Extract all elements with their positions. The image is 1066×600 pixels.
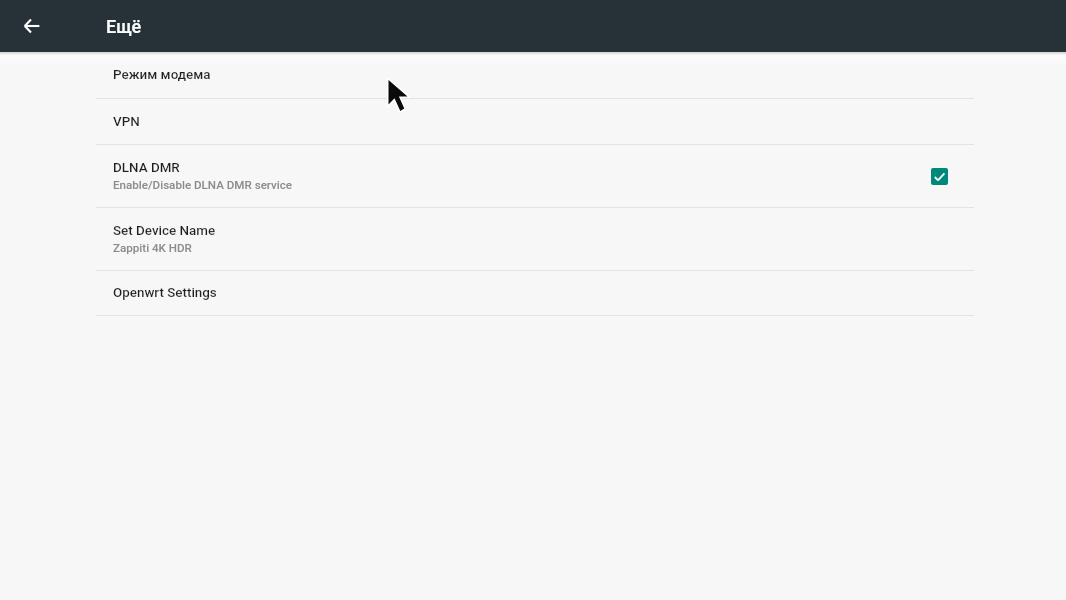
- staticText: Zappiti 4K HDR: [113, 241, 192, 255]
- staticText: Enable/Disable DLNA DMR service: [113, 178, 293, 192]
- button[interactable]: Set Device Name: [0, 208, 1066, 271]
- button[interactable]: Режим модема: [0, 52, 1066, 99]
- button[interactable]: Openwrt Settings: [0, 271, 1066, 316]
- staticText: DLNA DMR: [113, 160, 180, 176]
- button[interactable]: DLNA DMR: [0, 145, 1066, 208]
- staticText: VPN: [113, 114, 140, 130]
- button[interactable]: Back: [0, 0, 62, 52]
- staticText: Openwrt Settings: [113, 285, 217, 301]
- button[interactable]: VPN: [0, 99, 1066, 145]
- staticText: Режим модема: [113, 67, 211, 83]
- button[interactable]: Toggle DLNA DMR: [931, 168, 948, 185]
- staticText: Set Device Name: [113, 223, 216, 239]
- staticText: Ещё: [106, 16, 142, 37]
